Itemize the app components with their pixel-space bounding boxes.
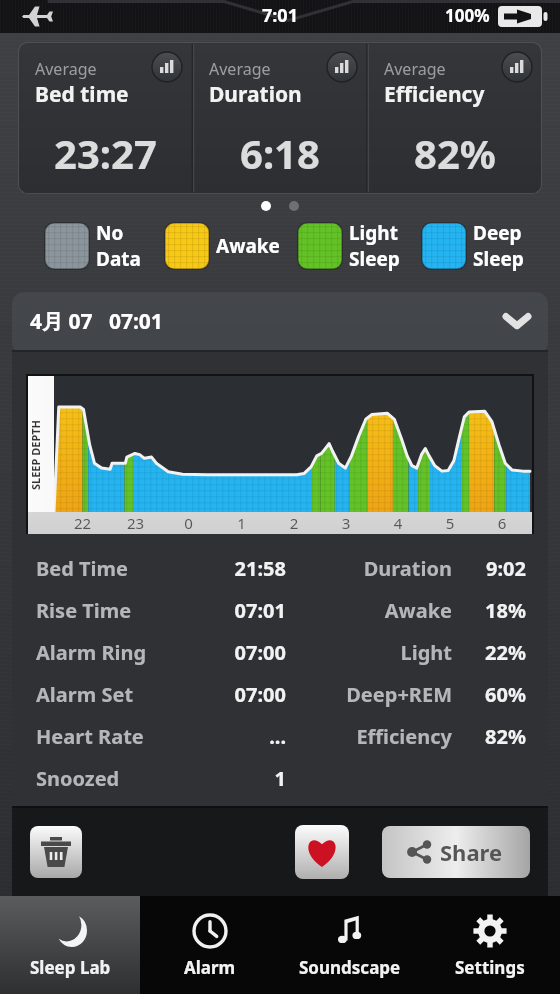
staticText: Duration <box>209 80 302 109</box>
staticText: 22% <box>462 639 526 666</box>
staticText: Data <box>96 246 141 272</box>
staticText: Efficiency <box>292 723 452 750</box>
staticText: 21:58 <box>176 555 286 582</box>
staticText: No <box>96 220 124 246</box>
staticText: 1 <box>215 513 268 533</box>
staticText: 82% <box>462 723 526 750</box>
staticText: 07:01 <box>176 597 286 624</box>
staticText: 2 <box>268 513 320 533</box>
staticText: Soundscape <box>299 956 401 979</box>
staticText: 3 <box>320 513 372 533</box>
button[interactable]: Awake <box>165 223 280 269</box>
button[interactable]: Delete <box>30 826 82 878</box>
staticText: 60% <box>462 681 526 708</box>
button[interactable]: Share <box>382 826 530 878</box>
other: Collapse <box>504 308 530 334</box>
staticText: 1 <box>176 765 286 792</box>
button[interactable]: Average <box>192 42 367 194</box>
staticText: 4 <box>372 513 424 533</box>
staticText: Light <box>292 639 452 666</box>
button[interactable]: Favourite <box>295 825 349 879</box>
staticText: 5 <box>424 513 476 533</box>
staticText: 9:02 <box>462 555 526 582</box>
staticText: 23:27 <box>54 126 157 180</box>
staticText: SLEEP DEPTH <box>28 419 43 490</box>
staticText: 82% <box>414 126 496 180</box>
staticText: Sleep Lab <box>30 956 111 979</box>
staticText: Deep+REM <box>292 681 452 708</box>
button[interactable]: No <box>45 220 141 272</box>
staticText: 18% <box>462 597 526 624</box>
staticText: Alarm Set <box>36 681 176 708</box>
staticText: Bed time <box>35 80 129 109</box>
staticText: Sleep <box>349 246 400 272</box>
staticText: Alarm <box>184 956 236 979</box>
button[interactable]: Light <box>298 220 400 272</box>
staticText: Average <box>384 58 446 80</box>
staticText: Average <box>209 58 271 80</box>
staticText: 23 <box>109 513 162 533</box>
staticText: 100% <box>445 4 490 27</box>
staticText: 4月 07 07:01 <box>30 307 163 336</box>
button[interactable]: Sleep Lab <box>0 896 140 994</box>
staticText: Deep <box>473 220 522 246</box>
staticText: Rise Time <box>36 597 176 624</box>
button[interactable]: Soundscape <box>280 896 420 994</box>
staticText: Sleep <box>473 246 524 272</box>
button[interactable]: Alarm <box>140 896 280 994</box>
staticText: 07:00 <box>176 639 286 666</box>
staticText: Efficiency <box>384 80 485 109</box>
staticText: Heart Rate <box>36 723 176 750</box>
staticText: ... <box>176 723 286 750</box>
staticText: Bed Time <box>36 555 176 582</box>
staticText: Snoozed <box>36 765 176 792</box>
button[interactable]: Deep <box>422 220 524 272</box>
staticText: Alarm Ring <box>36 639 176 666</box>
staticText: 0 <box>162 513 215 533</box>
staticText: 7:01 <box>262 3 298 28</box>
staticText: 22 <box>56 513 109 533</box>
staticText: Awake <box>292 597 452 624</box>
staticText: Share <box>440 837 503 867</box>
staticText: 6 <box>476 513 528 533</box>
button[interactable]: Average <box>18 42 192 194</box>
staticText: Duration <box>292 555 452 582</box>
staticText: Average <box>35 58 97 80</box>
button[interactable]: Average <box>367 42 542 194</box>
staticText: Light <box>349 220 398 246</box>
staticText: 6:18 <box>240 126 320 180</box>
staticText: 07:00 <box>176 681 286 708</box>
button[interactable]: 4月 07 07:01 <box>12 292 548 350</box>
button[interactable]: Settings <box>420 896 560 994</box>
staticText: Awake <box>216 233 280 259</box>
staticText: Settings <box>455 956 525 979</box>
